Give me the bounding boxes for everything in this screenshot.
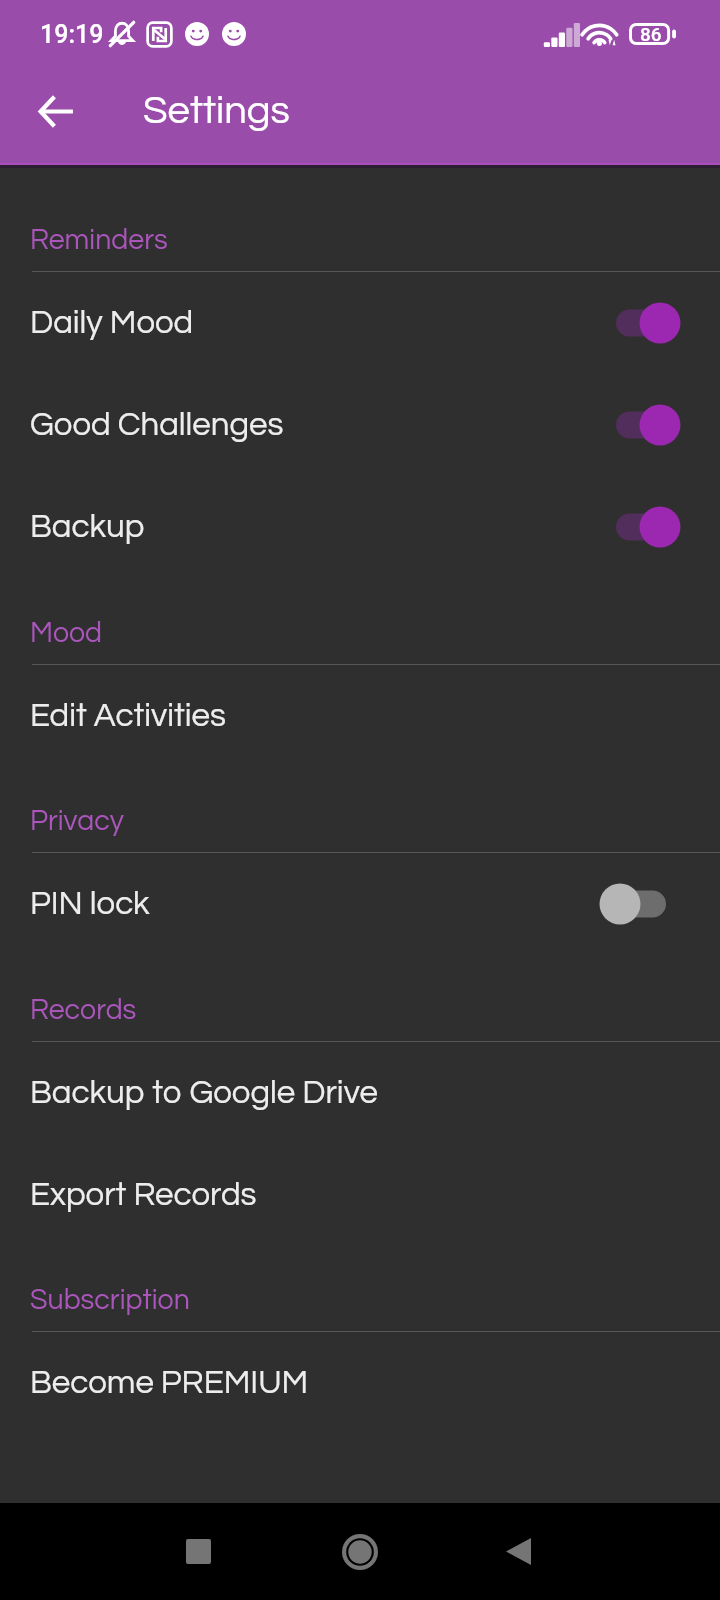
button[interactable]: Edit Activities (0, 665, 720, 767)
button[interactable]: Become PREMIUM (0, 1332, 720, 1434)
staticText: Daily Mood (30, 306, 600, 340)
staticText: Backup (30, 510, 600, 544)
staticText: 86 (640, 23, 662, 45)
staticText: Privacy (30, 807, 124, 836)
button[interactable]: Good Challenges (0, 374, 720, 476)
staticText: Export Records (30, 1178, 720, 1212)
staticText: Settings (143, 90, 290, 131)
staticText: Good Challenges (30, 408, 600, 442)
button[interactable]: Home (300, 1503, 420, 1600)
staticText: Subscription (30, 1286, 190, 1315)
staticText: Mood (30, 619, 103, 648)
staticText: Records (30, 996, 137, 1025)
button[interactable]: Back (458, 1503, 578, 1600)
button[interactable]: Export Records (0, 1144, 720, 1246)
button[interactable]: Recent apps (138, 1503, 258, 1600)
button[interactable]: Backup (0, 476, 720, 578)
button[interactable]: Daily Mood (0, 272, 720, 374)
staticText: Backup to Google Drive (30, 1076, 720, 1110)
staticText: Become PREMIUM (30, 1366, 720, 1400)
button[interactable]: Backup to Google Drive (0, 1042, 720, 1144)
staticText: Reminders (30, 226, 168, 255)
button[interactable]: PIN lock (0, 853, 720, 955)
staticText: 19:19 (40, 20, 104, 49)
staticText: PIN lock (30, 887, 600, 921)
staticText: Edit Activities (30, 699, 720, 733)
button[interactable]: Back (22, 77, 90, 145)
